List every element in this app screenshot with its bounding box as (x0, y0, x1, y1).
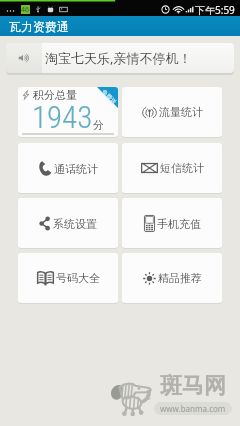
staticText: 分 (93, 118, 104, 132)
staticText: 下午5:59 (195, 3, 235, 16)
button[interactable]: 流量统计 (122, 87, 222, 137)
staticText: 瓦力资费通 (9, 19, 69, 34)
staticText: 短信统计 (160, 161, 204, 175)
button[interactable]: Announcement (6, 43, 234, 73)
staticText: 手机充值 (157, 217, 201, 231)
staticText: 免费送 (100, 88, 118, 106)
staticText: 淘宝七天乐,亲情不停机！ (45, 49, 192, 67)
staticText: 精品推荐 (158, 271, 202, 285)
button[interactable]: 号码大全 (18, 253, 118, 303)
button[interactable]: 通话统计 (18, 143, 118, 193)
other: Announcement (18, 53, 31, 63)
staticText: 斑马网 (160, 372, 226, 400)
button[interactable]: 系统设置 (18, 198, 118, 248)
staticText: 通话统计 (54, 162, 98, 176)
staticText: www.banma.com (160, 403, 226, 414)
button[interactable]: 积分总量 (18, 87, 118, 137)
staticText: 1943 (32, 99, 93, 135)
button[interactable]: 短信统计 (122, 143, 222, 193)
staticText: 流量统计 (159, 105, 203, 119)
button[interactable]: 精品推荐 (122, 253, 222, 303)
staticText: 46 (21, 5, 30, 14)
staticText: 积分总量 (33, 88, 77, 102)
staticText: 号码大全 (56, 271, 100, 285)
button[interactable]: 手机充值 (122, 198, 222, 248)
staticText: 系统设置 (53, 217, 97, 231)
